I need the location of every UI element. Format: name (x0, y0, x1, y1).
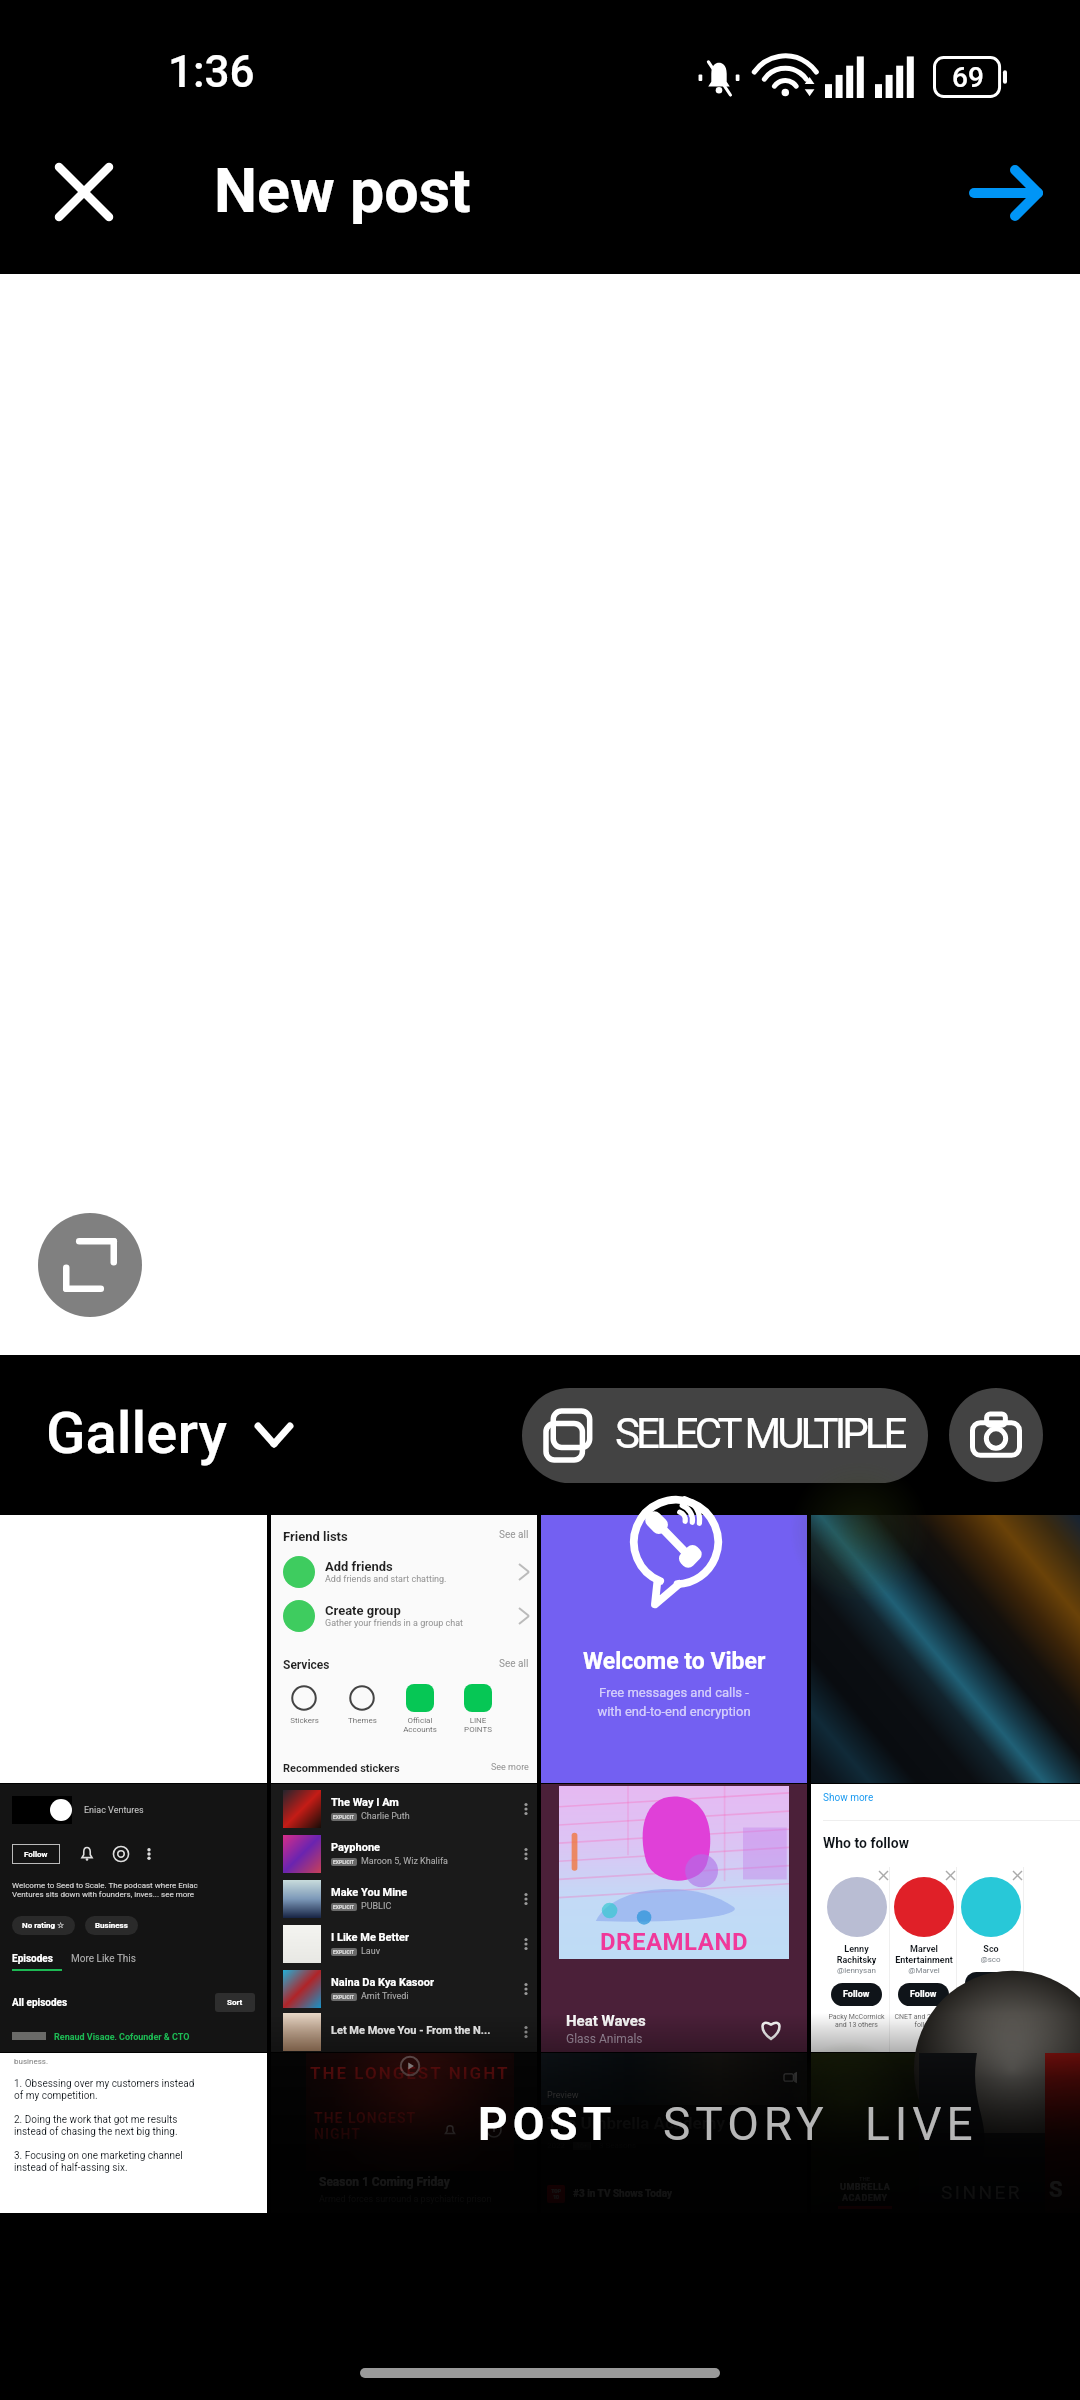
staticText: The Way I Am (331, 1796, 399, 1809)
button[interactable]: SELECT MULTIPLE (522, 1388, 928, 1483)
button[interactable]: Expand (38, 1213, 142, 1317)
button[interactable]: Gallery (46, 1401, 293, 1469)
staticText: Create group (325, 1603, 401, 1618)
button[interactable]: Eniac Ventures (0, 1784, 267, 2052)
staticText: EXPLICIT (333, 1814, 355, 1820)
staticText: EXPLICIT (333, 1949, 355, 1955)
staticText: Sco (983, 1944, 999, 1955)
staticText: Sort (227, 1998, 243, 2007)
staticText: Follow (843, 1989, 870, 2000)
button[interactable] (811, 1515, 1080, 1783)
staticText: Follow (24, 1850, 48, 1859)
staticText: DREAMLAND (600, 1928, 748, 1956)
staticText: Gather your friends in a group chat (325, 1618, 464, 1629)
staticText: Themes (348, 1716, 377, 1725)
staticText: New post (214, 155, 471, 226)
staticText: All episodes (12, 1997, 68, 2009)
staticText: CNET and 2 others (894, 2013, 953, 2021)
staticText: Who to follow (823, 1835, 909, 1851)
staticText: 69 (952, 61, 984, 94)
staticText: Glass Animals (566, 2032, 643, 2046)
staticText: No rating ☆ (22, 1921, 65, 1930)
staticText: SINNER (941, 2181, 1023, 2203)
staticText: instead of half-assing six. (14, 2162, 128, 2174)
staticText: 2. Doing the work that got me results (14, 2114, 178, 2126)
staticText: See all (499, 1529, 529, 1541)
staticText: EXPLICIT (333, 1904, 355, 1910)
staticText: ACADEMY (842, 2193, 888, 2204)
staticText: @Marvel (908, 1966, 940, 1975)
staticText: @sco (980, 1955, 1001, 1964)
staticText: Episodes (12, 1953, 53, 1965)
staticText: Lauv (361, 1946, 381, 1957)
staticText: Show more (823, 1792, 874, 1804)
staticText: @lennysan (837, 1966, 876, 1975)
button[interactable]: business. (0, 2053, 267, 2213)
staticText: THE LONGEST NIGHT (310, 2063, 510, 2083)
button[interactable]: THE (811, 2053, 1080, 2213)
staticText: See all (499, 1658, 529, 1670)
staticText: EXPLICIT (333, 1994, 355, 2000)
staticText: of my competition. (14, 2090, 98, 2102)
staticText: 1:36 (168, 46, 255, 98)
staticText: SELECT MULTIPLE (615, 1409, 904, 1458)
staticText: Lenny Rachitsky (826, 1944, 887, 1966)
staticText: Follow (977, 1978, 1004, 1989)
staticText: Make You Mine (331, 1886, 408, 1899)
staticText: TOP 10 (551, 2188, 561, 2200)
staticText: Ventures sits down with founders, inves.… (12, 1890, 195, 1899)
staticText: See more (491, 1762, 529, 1773)
staticText: Let Me Move You - From the N... (331, 2024, 491, 2037)
staticText: NIGHT (314, 2126, 361, 2142)
button[interactable]: Close (23, 131, 145, 253)
staticText: business. (14, 2057, 49, 2066)
staticText: Business (95, 1921, 128, 1930)
staticText: EXPLICIT (333, 1859, 355, 1865)
staticText: Season 1 Coming Friday (319, 2175, 450, 2189)
staticText: Services (283, 1658, 330, 1672)
staticText: Renaud Visage, Cofounder & CTO (54, 2032, 190, 2040)
staticText: Free messages and calls - (599, 1685, 749, 1700)
staticText: THE LONGEST (314, 2110, 417, 2126)
staticText: Preview (547, 2090, 579, 2101)
staticText: Packy McCormick (828, 2013, 885, 2021)
staticText: Add friends and start chatting. (325, 1574, 447, 1585)
button[interactable]: Welcome to Viber (541, 1515, 807, 1783)
button[interactable]: Preview (541, 2053, 807, 2213)
staticText: 3. Focusing on one marketing channel (14, 2150, 183, 2162)
staticText: #3 in TV Shows Today (573, 2188, 672, 2200)
staticText: 1. Obsessing over my customers instead (14, 2078, 195, 2090)
staticText: Recommended stickers (283, 1762, 400, 1775)
staticText: Welcome to Viber (583, 1648, 766, 1675)
button[interactable]: The Way I Am (271, 1784, 537, 2052)
staticText: Welcome to Seed to Scale. The podcast wh… (12, 1881, 198, 1890)
staticText: UMBRELLA (840, 2182, 891, 2193)
staticText: POST (478, 2097, 617, 2151)
staticText: Marvel Entertainment (895, 1944, 953, 1966)
button[interactable]: LIVE (837, 2075, 1006, 2173)
staticText: LIVE (865, 2097, 978, 2151)
staticText: STORY (663, 2097, 829, 2151)
button[interactable]: Show more (811, 1784, 1080, 2052)
staticText: More Like This (71, 1953, 136, 1965)
button[interactable]: Camera (949, 1388, 1043, 1482)
button[interactable]: Friend lists (271, 1515, 537, 1783)
staticText: Amit Trivedi (361, 1991, 409, 2002)
button[interactable]: DREAMLAND (541, 1784, 807, 2052)
button[interactable]: Next (946, 132, 1068, 254)
button[interactable]: POST (450, 2075, 645, 2173)
staticText: I Like Me Better (331, 1931, 409, 1944)
button[interactable]: STORY (635, 2075, 857, 2173)
staticText: and 13 others (835, 2021, 878, 2029)
staticText: Heat Waves (566, 2012, 646, 2030)
staticText: Friend lists (283, 1529, 348, 1544)
button[interactable]: THE LONGEST NIGHT (271, 2053, 537, 2213)
staticText: PUBLIC (361, 1901, 392, 1912)
